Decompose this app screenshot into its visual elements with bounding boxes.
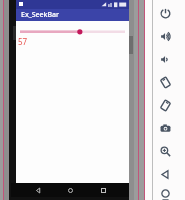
button[interactable]: Screenshot	[152, 117, 178, 140]
staticText: 57	[18, 36, 28, 47]
button[interactable]: Back	[32, 184, 44, 196]
button[interactable]: Volume down	[152, 48, 178, 71]
button[interactable]: Ex_SeekBar	[16, 9, 129, 21]
button[interactable]: Rotate left	[152, 71, 178, 94]
button[interactable]: Home	[64, 184, 76, 196]
button[interactable]: Power	[152, 2, 178, 25]
button[interactable]: Back	[152, 163, 178, 186]
button[interactable]: Seek bar, 57	[16, 28, 129, 37]
button[interactable]: Zoom	[152, 140, 178, 163]
button[interactable]: Recent apps	[97, 184, 109, 196]
staticText: Ex_SeekBar	[21, 10, 60, 20]
button[interactable]: Home	[152, 186, 178, 200]
button[interactable]: Rotate right	[152, 94, 178, 117]
button[interactable]: Volume up	[152, 25, 178, 48]
